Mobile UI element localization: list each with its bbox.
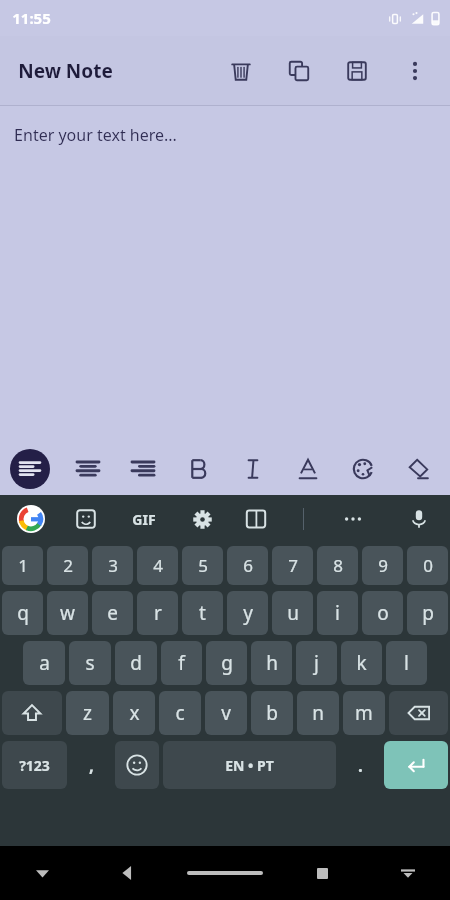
staticText: ?123 — [19, 756, 50, 775]
button[interactable]: f — [161, 641, 202, 685]
button[interactable]: Save — [328, 43, 386, 99]
button[interactable]: t — [182, 591, 223, 635]
button[interactable]: Translate — [240, 503, 272, 535]
button[interactable]: i — [317, 591, 358, 635]
button[interactable]: Text color — [335, 443, 390, 495]
staticText: q — [17, 600, 29, 626]
button[interactable]: g — [206, 641, 247, 685]
button[interactable]: Shift — [2, 691, 62, 735]
button[interactable]: h — [251, 641, 292, 685]
button[interactable]: Stickers — [70, 503, 102, 535]
button[interactable]: Enter — [384, 741, 448, 789]
staticText: 0 — [423, 554, 433, 577]
staticText: f — [178, 650, 185, 676]
button[interactable]: Google — [14, 502, 48, 536]
staticText: v — [221, 700, 231, 726]
staticText: , — [89, 754, 94, 777]
button[interactable]: Back — [85, 846, 170, 900]
button[interactable]: 8 — [317, 546, 358, 585]
button[interactable]: v — [205, 691, 247, 735]
button[interactable]: Align center — [60, 443, 115, 495]
staticText: c — [175, 700, 185, 726]
staticText: 6 — [243, 554, 253, 577]
button[interactable]: More options — [386, 43, 444, 99]
staticText: n — [312, 700, 324, 726]
staticText: u — [287, 600, 299, 626]
staticText: w — [60, 600, 75, 626]
button[interactable]: o — [362, 591, 403, 635]
staticText: 7 — [288, 554, 298, 577]
staticText: EN • PT — [225, 756, 274, 775]
button[interactable]: y — [227, 591, 268, 635]
button[interactable]: Align left — [0, 443, 60, 495]
button[interactable]: 1 — [2, 546, 43, 585]
button[interactable]: j — [296, 641, 337, 685]
button[interactable]: 7 — [272, 546, 313, 585]
staticText: 8 — [333, 554, 343, 577]
button[interactable]: Backspace — [389, 691, 448, 735]
button[interactable]: Hide keyboard — [0, 846, 85, 900]
button[interactable]: Emoji — [115, 741, 159, 789]
staticText: 2 — [63, 554, 73, 577]
button[interactable]: Erase formatting — [390, 443, 445, 495]
button[interactable]: c — [159, 691, 201, 735]
staticText: 11:55 — [12, 8, 51, 28]
staticText: k — [356, 650, 367, 676]
button[interactable]: u — [272, 591, 313, 635]
button[interactable]: 2 — [47, 546, 88, 585]
staticText: b — [266, 700, 278, 726]
staticText: o — [377, 600, 389, 626]
button[interactable]: l — [386, 641, 427, 685]
button[interactable]: . — [340, 741, 380, 789]
button[interactable]: w — [47, 591, 88, 635]
button[interactable]: 6 — [227, 546, 268, 585]
button[interactable]: z — [66, 691, 109, 735]
staticText: 4 — [153, 554, 163, 577]
staticText: x — [129, 700, 140, 726]
button[interactable]: 5 — [182, 546, 223, 585]
button[interactable]: More — [336, 502, 370, 536]
staticText: m — [355, 700, 373, 726]
button[interactable]: Recents — [280, 846, 365, 900]
button[interactable]: b — [251, 691, 293, 735]
button[interactable]: d — [115, 641, 157, 685]
staticText: Enter your text here... — [14, 124, 177, 146]
button[interactable]: 0 — [407, 546, 448, 585]
button[interactable]: GIF — [124, 499, 164, 539]
button[interactable]: Underline — [280, 443, 335, 495]
button[interactable]: Copy — [270, 43, 328, 99]
staticText: i — [335, 600, 340, 626]
button[interactable]: n — [297, 691, 339, 735]
button[interactable]: Align right — [115, 443, 170, 495]
button[interactable]: Delete — [212, 43, 270, 99]
button[interactable]: Home — [170, 846, 280, 900]
button[interactable]: p — [407, 591, 448, 635]
button[interactable]: Italic — [225, 443, 280, 495]
button[interactable]: ?123 — [2, 741, 67, 789]
button[interactable]: r — [137, 591, 178, 635]
button[interactable]: 9 — [362, 546, 403, 585]
staticText: g — [221, 650, 233, 676]
staticText: 1 — [18, 554, 28, 577]
button[interactable]: EN • PT — [163, 741, 336, 789]
button[interactable]: m — [343, 691, 385, 735]
button[interactable]: e — [92, 591, 133, 635]
staticText: New Note — [18, 58, 113, 84]
staticText: s — [85, 650, 95, 676]
button[interactable]: Bold — [170, 443, 225, 495]
staticText: r — [154, 600, 162, 626]
staticText: l — [404, 650, 409, 676]
button[interactable]: a — [23, 641, 65, 685]
button[interactable]: x — [113, 691, 155, 735]
button[interactable]: Settings — [186, 503, 218, 535]
button[interactable]: q — [2, 591, 43, 635]
button[interactable]: Switch keyboard — [365, 846, 450, 900]
staticText: 5 — [198, 554, 208, 577]
button[interactable]: Voice input — [402, 502, 436, 536]
staticText: e — [107, 600, 118, 626]
button[interactable]: s — [69, 641, 111, 685]
button[interactable]: k — [341, 641, 382, 685]
button[interactable]: 4 — [137, 546, 178, 585]
button[interactable]: , — [71, 741, 111, 789]
button[interactable]: 3 — [92, 546, 133, 585]
